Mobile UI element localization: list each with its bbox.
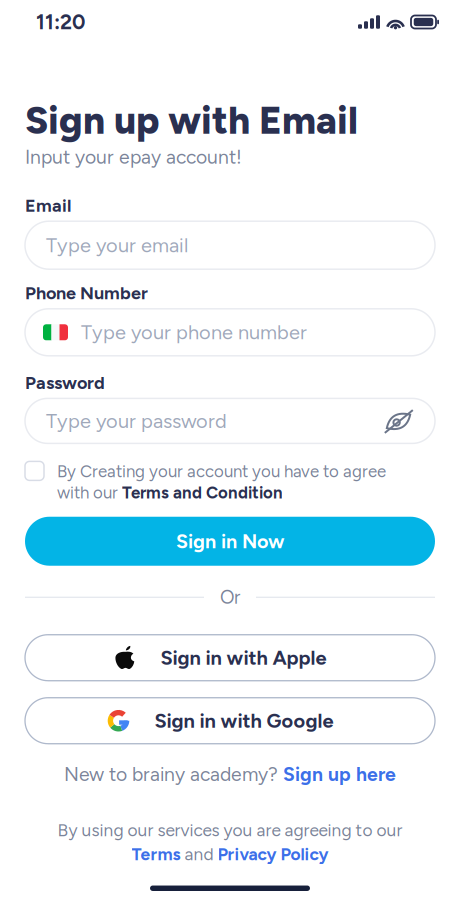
button[interactable]: Privacy Policy	[217, 844, 328, 864]
button[interactable]: Sign in with Apple	[25, 635, 435, 681]
staticText: Terms	[131, 844, 180, 864]
staticText: Sign in Now	[176, 529, 284, 553]
staticText: Sign in with Google	[154, 709, 333, 733]
staticText: Or	[220, 586, 240, 608]
staticText: Sign up with Email	[25, 97, 358, 143]
staticText: Password	[25, 372, 105, 393]
button[interactable]: Sign in Now	[25, 517, 435, 566]
staticText: By Creating your account you have to agr…	[57, 461, 386, 482]
staticText: Sign up here	[283, 763, 396, 786]
staticText: Privacy Policy	[217, 844, 328, 864]
staticText: New to brainy academy?	[64, 763, 283, 786]
staticText: Sign in with Apple	[160, 646, 326, 670]
staticText: Type your email	[46, 233, 188, 257]
staticText: Type your phone number	[81, 320, 307, 344]
staticText: Type your password	[46, 409, 227, 433]
button[interactable]: New to brainy academy?	[25, 763, 435, 786]
staticText: Email	[25, 195, 71, 216]
staticText: Input your epay account!	[25, 145, 242, 169]
button[interactable]: By Creating your account you have to agr…	[25, 461, 435, 503]
staticText: with our	[57, 483, 122, 503]
button[interactable]: Sign in with Google	[25, 698, 435, 744]
staticText: Phone Number	[25, 282, 148, 304]
staticText: By using our services you are agreeing t…	[57, 820, 402, 841]
staticText: Terms and Condition	[122, 483, 283, 503]
button[interactable]: Terms	[131, 844, 180, 864]
staticText: and	[180, 844, 217, 864]
staticText: 11:20	[36, 10, 85, 34]
